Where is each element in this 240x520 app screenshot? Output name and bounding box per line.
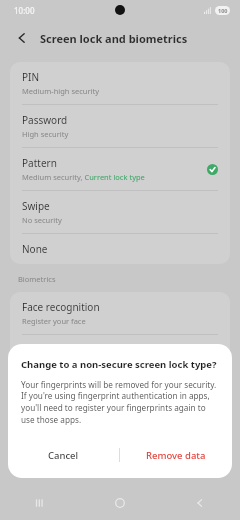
- button[interactable]: Back: [10, 26, 34, 50]
- staticText: Your fingerprints will be removed for yo…: [21, 379, 219, 426]
- staticText: 10:00: [14, 5, 35, 16]
- staticText: Fingerprints: [22, 343, 80, 357]
- staticText: Register your face: [22, 316, 86, 326]
- button[interactable]: Password: [10, 105, 230, 147]
- staticText: Biometrics: [18, 274, 56, 284]
- button[interactable]: Remove data: [120, 440, 232, 470]
- staticText: Register fingerprints: [22, 359, 95, 369]
- staticText: PIN: [22, 70, 40, 84]
- button[interactable]: Fingerprints: [10, 335, 230, 377]
- button[interactable]: Cancel: [8, 440, 119, 470]
- staticText: Change to a non-secure screen lock type?: [21, 358, 217, 371]
- staticText: Medium security, Current lock type: [22, 172, 145, 182]
- staticText: Face recognition: [22, 300, 100, 314]
- staticText: High security: [22, 129, 69, 139]
- staticText: Remove data: [146, 449, 206, 462]
- button[interactable]: None: [10, 234, 230, 264]
- staticText: 100: [218, 7, 228, 14]
- staticText: Medium-high security: [22, 86, 100, 96]
- staticText: Cancel: [48, 449, 79, 462]
- staticText: Password: [22, 113, 68, 127]
- staticText: Pattern: [22, 156, 57, 170]
- staticText: None: [22, 242, 48, 256]
- button[interactable]: Swipe: [10, 191, 230, 233]
- button[interactable]: PIN: [10, 62, 230, 104]
- button[interactable]: Pattern: [10, 148, 230, 190]
- staticText: No security: [22, 215, 62, 225]
- button[interactable]: Face recognition: [10, 292, 230, 334]
- staticText: Screen lock and biometrics: [40, 31, 188, 46]
- staticText: Swipe: [22, 199, 50, 213]
